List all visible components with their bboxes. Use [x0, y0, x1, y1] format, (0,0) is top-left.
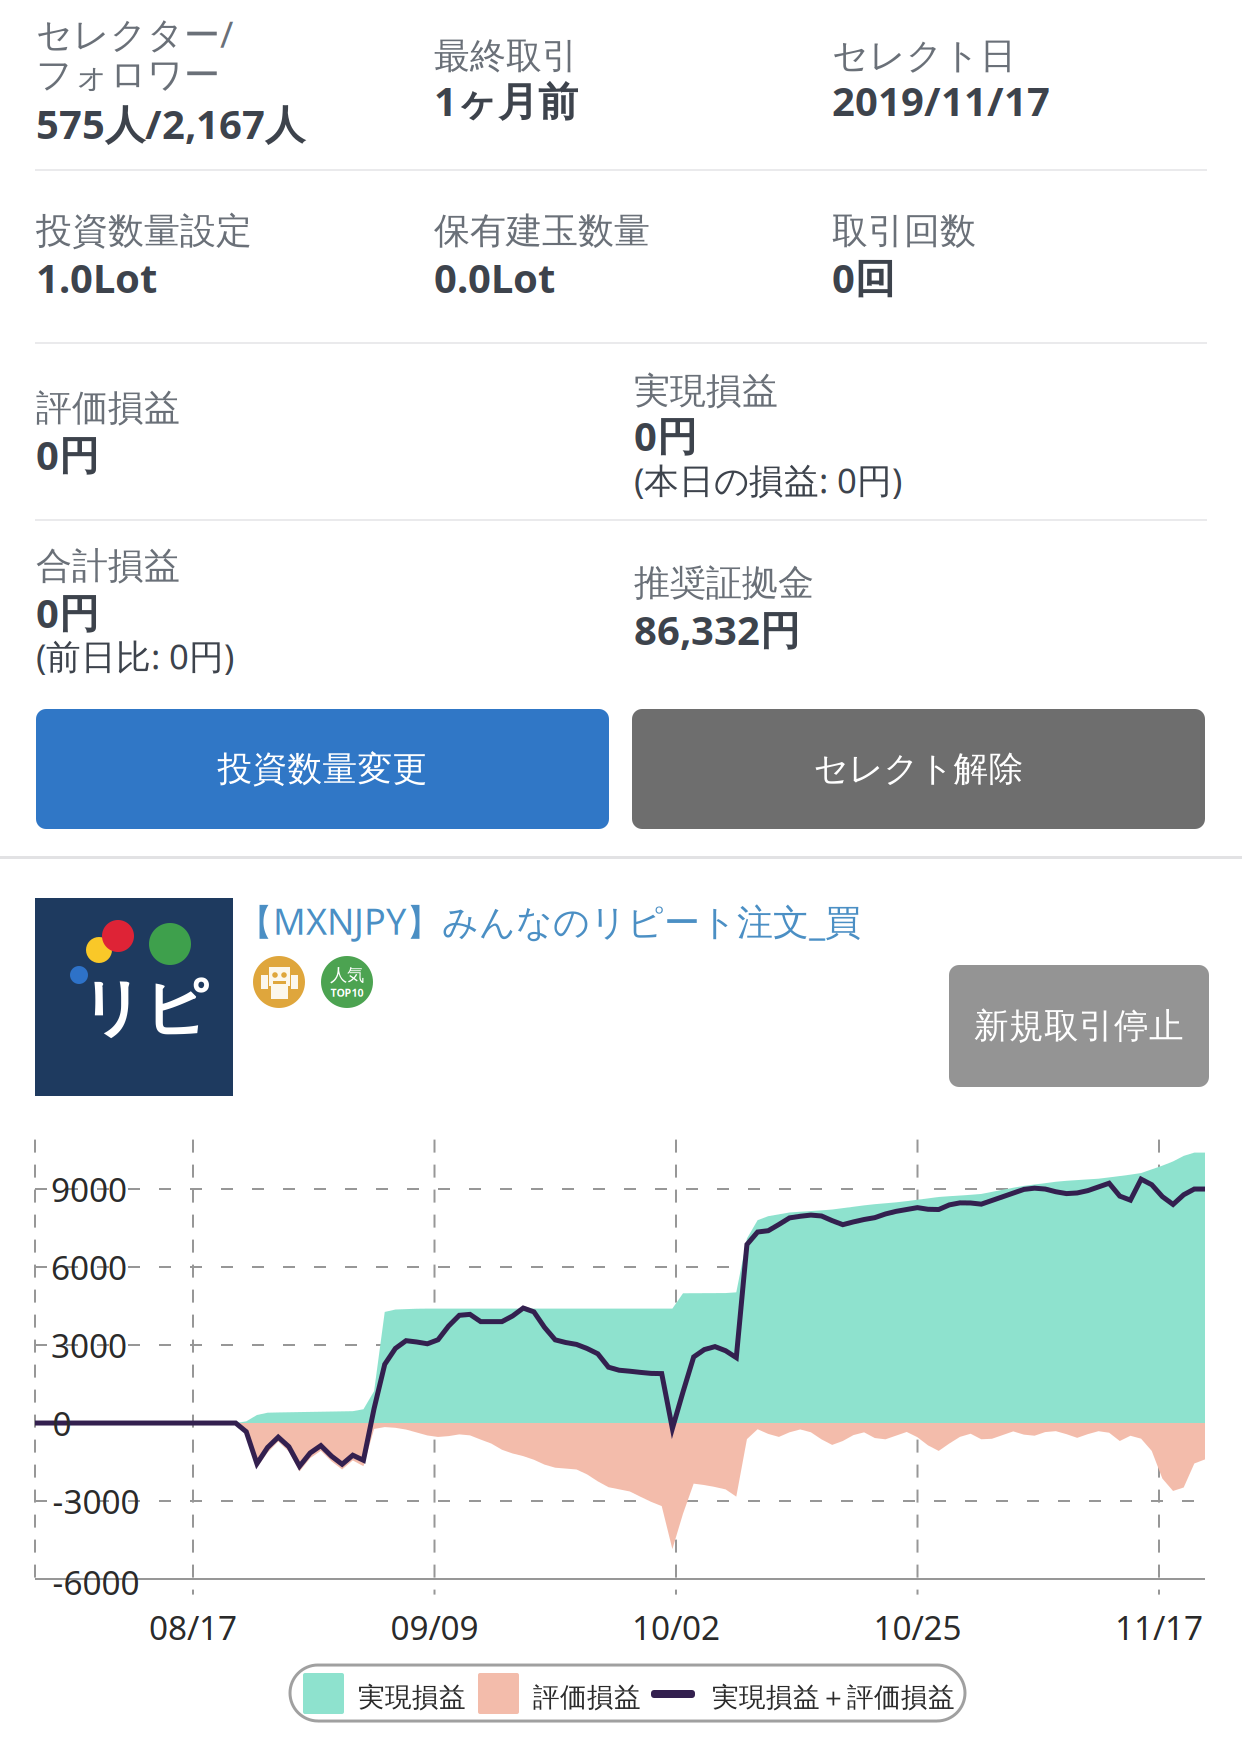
- staticText: 合計損益: [36, 544, 180, 588]
- staticText: 取引回数: [832, 209, 976, 253]
- staticText: 6000: [51, 1245, 127, 1289]
- staticText: -3000: [52, 1479, 139, 1523]
- staticText: 評価損益: [36, 386, 180, 430]
- staticText: 推奨証拠金: [634, 561, 814, 605]
- staticText: リピ: [80, 970, 208, 1047]
- staticText: 保有建玉数量: [434, 209, 650, 253]
- staticText: フォロワー: [36, 53, 220, 97]
- button[interactable]: リピ: [35, 898, 915, 1098]
- staticText: TOP10: [330, 986, 363, 1000]
- staticText: 実現損益＋評価損益: [712, 1681, 955, 1714]
- staticText: -6000: [52, 1560, 139, 1604]
- staticText: 1.0Lot: [36, 251, 157, 304]
- staticText: 0円: [36, 428, 99, 481]
- button[interactable]: セレクト解除: [632, 709, 1205, 829]
- staticText: 評価損益: [533, 1681, 641, 1714]
- staticText: 09/09: [390, 1605, 478, 1649]
- staticText: セレクター/: [36, 10, 233, 58]
- staticText: 実現損益: [358, 1681, 466, 1714]
- staticText: 新規取引停止: [974, 1005, 1184, 1047]
- staticText: 最終取引: [434, 34, 578, 78]
- staticText: 0円: [36, 586, 99, 639]
- staticText: (前日比: 0円): [36, 633, 234, 679]
- staticText: 人気: [330, 964, 364, 986]
- staticText: 実現損益: [634, 369, 778, 413]
- staticText: 1ヶ月前: [434, 74, 578, 127]
- staticText: 0: [52, 1401, 71, 1445]
- staticText: 10/02: [632, 1605, 720, 1649]
- staticText: 2019/11/17: [832, 74, 1050, 127]
- staticText: 86,332円: [634, 603, 800, 656]
- staticText: 0.0Lot: [434, 251, 555, 304]
- staticText: 0回: [832, 251, 895, 304]
- staticText: 投資数量変更: [217, 748, 427, 790]
- staticText: 投資数量設定: [36, 209, 252, 253]
- staticText: 0円: [634, 409, 697, 462]
- button[interactable]: 投資数量変更: [36, 709, 609, 829]
- button[interactable]: 新規取引停止: [949, 965, 1209, 1087]
- staticText: 10/25: [873, 1605, 961, 1649]
- staticText: 11/17: [1115, 1605, 1203, 1649]
- staticText: 3000: [51, 1323, 127, 1367]
- staticText: 575人/2,167人: [36, 97, 305, 150]
- staticText: 9000: [51, 1167, 127, 1211]
- staticText: 08/17: [149, 1605, 237, 1649]
- staticText: (本日の損益: 0円): [634, 457, 902, 503]
- staticText: セレクト日: [832, 34, 1016, 78]
- staticText: セレクト解除: [813, 748, 1023, 790]
- staticText: 【MXNJPY】みんなのリピート注文_買: [237, 897, 861, 945]
